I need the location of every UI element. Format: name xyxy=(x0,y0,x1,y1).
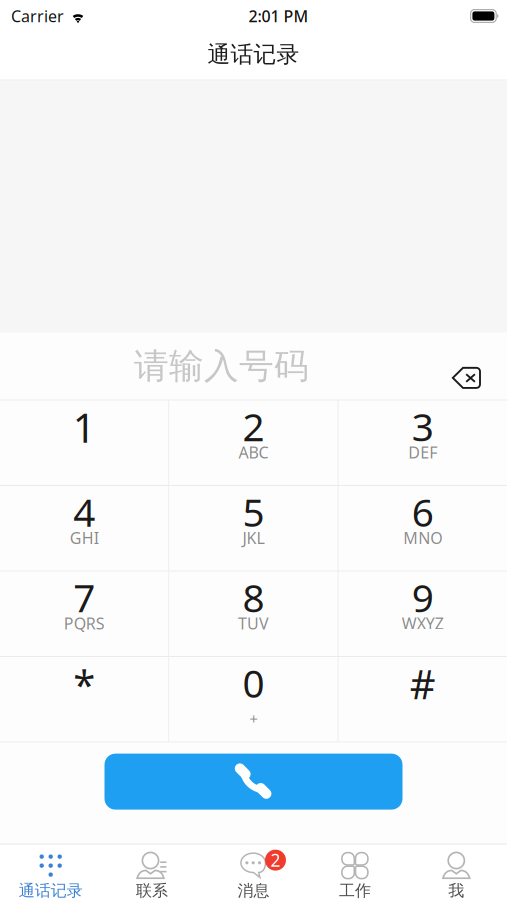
staticText: 8 xyxy=(242,572,264,623)
staticText: 2 xyxy=(242,401,264,452)
button[interactable]: 7 xyxy=(0,572,168,656)
staticText: # xyxy=(410,657,436,710)
button[interactable]: 2 xyxy=(169,401,338,485)
staticText: GHI xyxy=(70,527,99,548)
staticText: 通话记录 xyxy=(19,881,83,900)
staticText: 请输入号码 xyxy=(134,345,309,387)
staticText: 1 xyxy=(73,401,96,454)
staticText: 2 xyxy=(270,849,280,872)
button[interactable]: 工作 xyxy=(304,845,406,900)
staticText: 工作 xyxy=(339,881,371,900)
staticText: 通话记录 xyxy=(207,41,299,68)
staticText: + xyxy=(249,709,257,729)
button[interactable]: 3 xyxy=(339,401,507,485)
staticText: * xyxy=(73,657,95,710)
button[interactable]: 6 xyxy=(339,486,507,571)
staticText: 0 xyxy=(242,657,264,708)
staticText: 9 xyxy=(412,572,434,623)
staticText: 4 xyxy=(73,486,95,537)
staticText: 2:01 PM xyxy=(248,5,308,27)
staticText: 3 xyxy=(412,401,434,452)
button[interactable]: 4 xyxy=(0,486,168,571)
button[interactable]: # xyxy=(339,657,507,742)
staticText: 5 xyxy=(242,486,264,537)
staticText: MNO xyxy=(403,527,442,548)
staticText: DEF xyxy=(408,442,437,463)
staticText: PQRS xyxy=(64,613,105,634)
button[interactable]: 9 xyxy=(339,572,507,656)
button[interactable]: 通话记录 xyxy=(0,845,101,900)
button[interactable]: 5 xyxy=(169,486,338,571)
staticText: TUV xyxy=(238,613,269,634)
staticText: 我 xyxy=(448,881,464,900)
staticText: 6 xyxy=(412,486,434,537)
staticText: ABC xyxy=(238,442,268,463)
button[interactable]: 拨号 xyxy=(104,754,402,810)
button[interactable]: 0 xyxy=(169,657,338,742)
button[interactable]: * xyxy=(0,657,168,742)
staticText: 消息 xyxy=(237,881,269,900)
button[interactable]: 1 xyxy=(0,401,168,485)
staticText: 7 xyxy=(73,572,95,623)
button[interactable]: 2 xyxy=(203,845,304,900)
button[interactable]: 删除 xyxy=(440,339,494,393)
staticText: JKL xyxy=(242,527,264,548)
button[interactable]: 我 xyxy=(406,845,507,900)
button[interactable]: 8 xyxy=(169,572,338,656)
button[interactable]: 联系 xyxy=(101,845,203,900)
staticText: WXYZ xyxy=(402,613,444,634)
staticText: 联系 xyxy=(136,881,168,900)
staticText: Carrier xyxy=(11,5,64,27)
